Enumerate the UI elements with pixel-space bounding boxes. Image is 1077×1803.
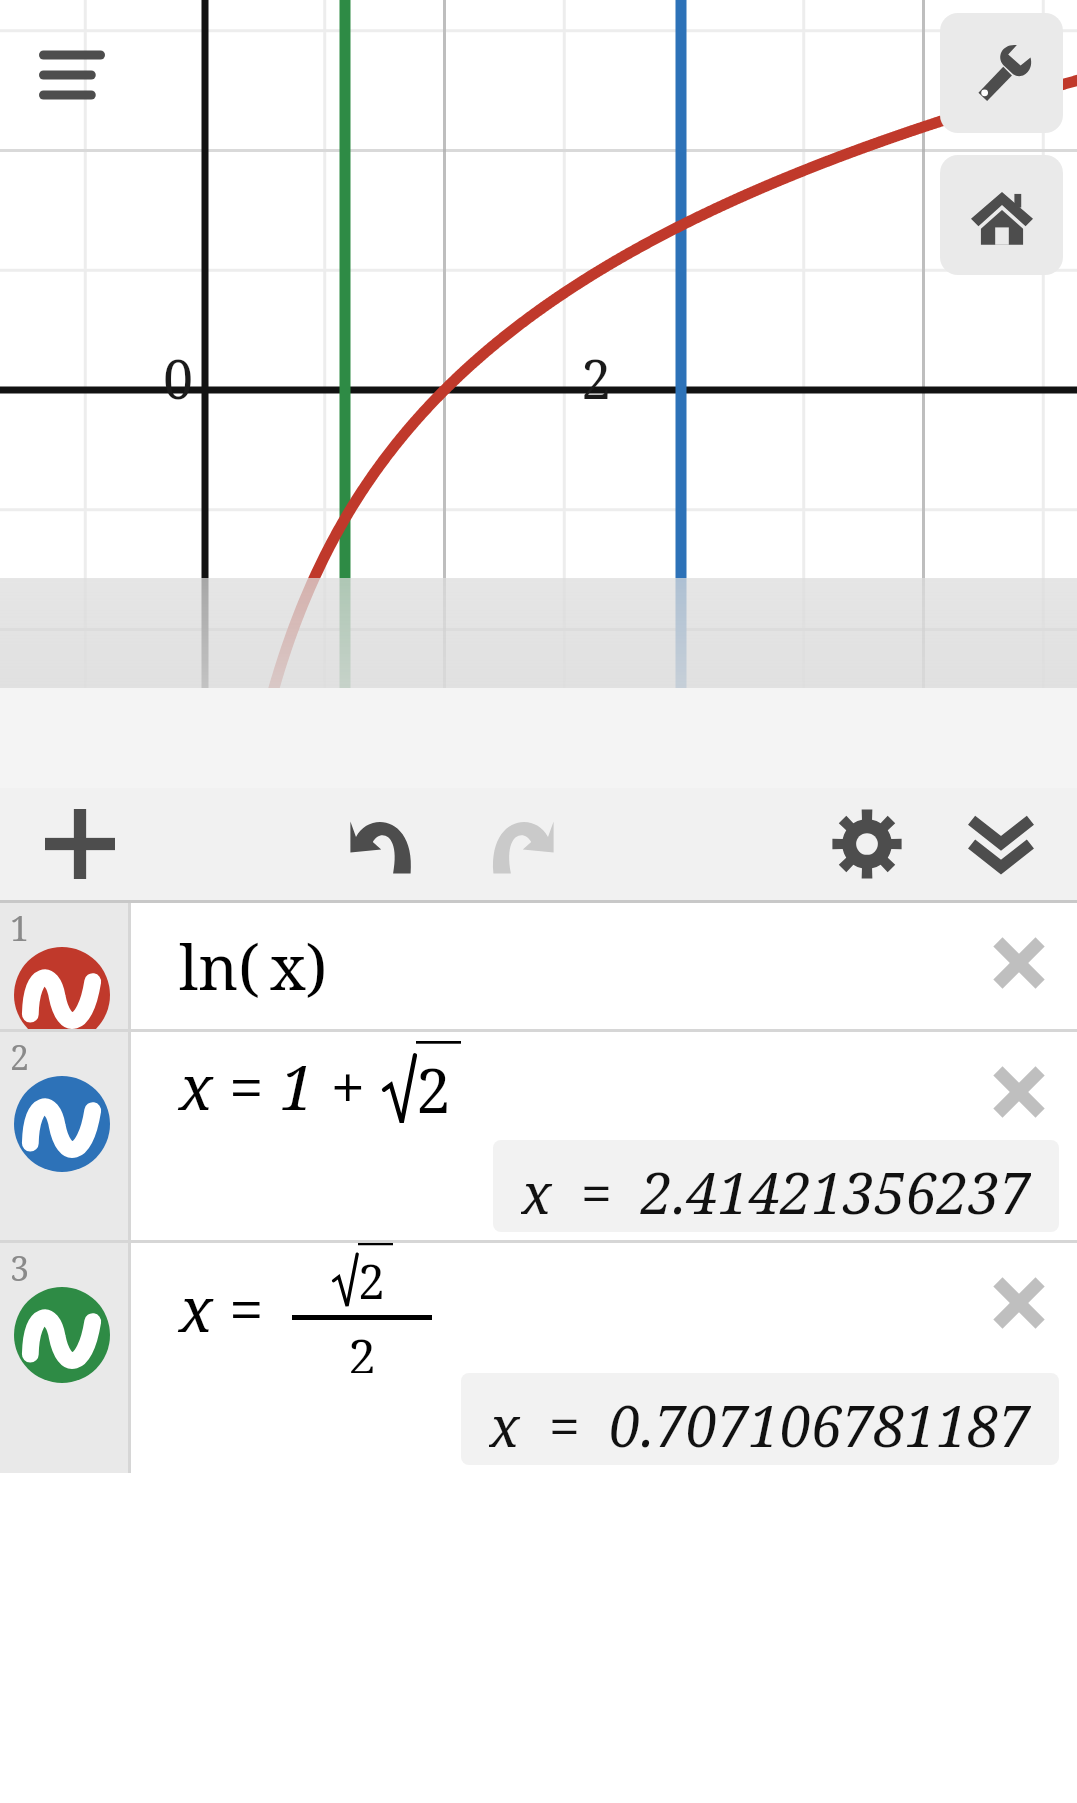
button[interactable]: Delete row xyxy=(971,1255,1067,1351)
staticText: x = 2.41421356237 xyxy=(521,1154,1031,1218)
button[interactable]: Home xyxy=(940,155,1063,275)
button[interactable]: 3 xyxy=(0,1243,128,1473)
button[interactable]: ln( x) xyxy=(131,903,1077,1029)
button[interactable]: Delete row xyxy=(971,915,1067,1011)
staticText: 2 xyxy=(10,1034,30,1080)
button[interactable]: Delete row xyxy=(971,1044,1067,1140)
staticText: x = 0.707106781187 xyxy=(489,1387,1031,1451)
staticText: 2 xyxy=(416,1047,451,1131)
staticText: 0 xyxy=(163,341,194,415)
button[interactable]: 1 xyxy=(0,903,128,1029)
button[interactable]: Redo xyxy=(468,792,572,896)
staticText: 2 xyxy=(581,341,612,415)
button[interactable]: x = 1 + xyxy=(131,1032,1077,1240)
button[interactable]: Menu xyxy=(22,22,122,122)
staticText: 2 xyxy=(348,1322,376,1373)
button[interactable]: x = 0.707106781187 xyxy=(461,1373,1059,1465)
staticText: x = xyxy=(179,1266,280,1350)
staticText: 1 xyxy=(10,905,30,951)
staticText: 2 xyxy=(358,1248,385,1313)
button[interactable]: x = 2.41421356237 xyxy=(493,1140,1059,1232)
button[interactable]: Settings xyxy=(815,792,919,896)
staticText: ln( x) xyxy=(179,924,328,1008)
button[interactable]: Undo xyxy=(332,792,436,896)
button[interactable]: x = xyxy=(131,1243,1077,1473)
staticText: 3 xyxy=(10,1245,30,1291)
button[interactable]: Settings xyxy=(940,13,1063,133)
button[interactable]: Add xyxy=(28,792,132,896)
button[interactable]: 2 xyxy=(0,1032,128,1240)
button[interactable]: Collapse xyxy=(949,792,1053,896)
staticText: x = 1 + xyxy=(179,1044,382,1128)
